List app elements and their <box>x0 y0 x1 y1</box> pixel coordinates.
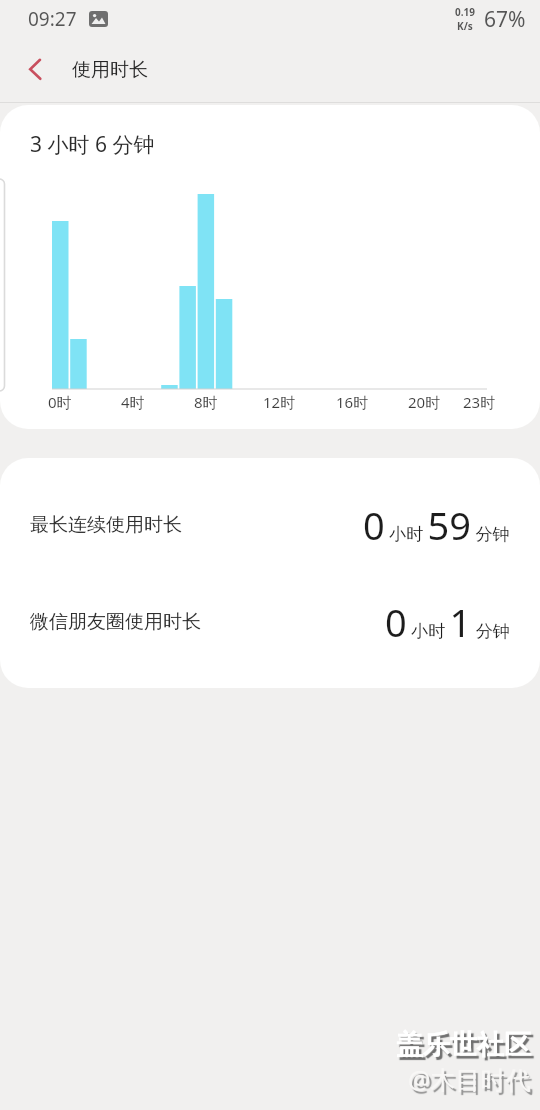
staticText: @木目时代 <box>408 1062 531 1096</box>
staticText: 4时 <box>121 392 145 412</box>
staticText: 12时 <box>263 392 296 412</box>
staticText: 0 小时 1 分钟 <box>385 596 510 648</box>
staticText: 67% <box>484 5 526 34</box>
staticText: 最长连续使用时长 <box>30 513 182 537</box>
staticText: 8时 <box>194 392 218 412</box>
staticText: 20时 <box>408 392 441 412</box>
staticText: 09:27 <box>28 6 77 32</box>
staticText: 23时 <box>463 392 496 412</box>
staticText: 0时 <box>48 392 72 412</box>
staticText: 微信朋友圈使用时长 <box>30 610 201 634</box>
staticText: K/s <box>457 19 473 33</box>
staticText: 3 小时 6 分钟 <box>30 130 155 159</box>
staticText: 0.19 <box>455 5 475 19</box>
button[interactable]: 最长连续使用时长 <box>30 482 510 568</box>
button[interactable] <box>0 38 64 102</box>
staticText: 16时 <box>336 392 369 412</box>
staticText: 0 小时 59 分钟 <box>363 499 510 551</box>
staticText: 盖乐世社区 <box>396 1028 531 1062</box>
button[interactable]: 微信朋友圈使用时长 <box>30 579 510 665</box>
staticText: 使用时长 <box>72 58 148 82</box>
